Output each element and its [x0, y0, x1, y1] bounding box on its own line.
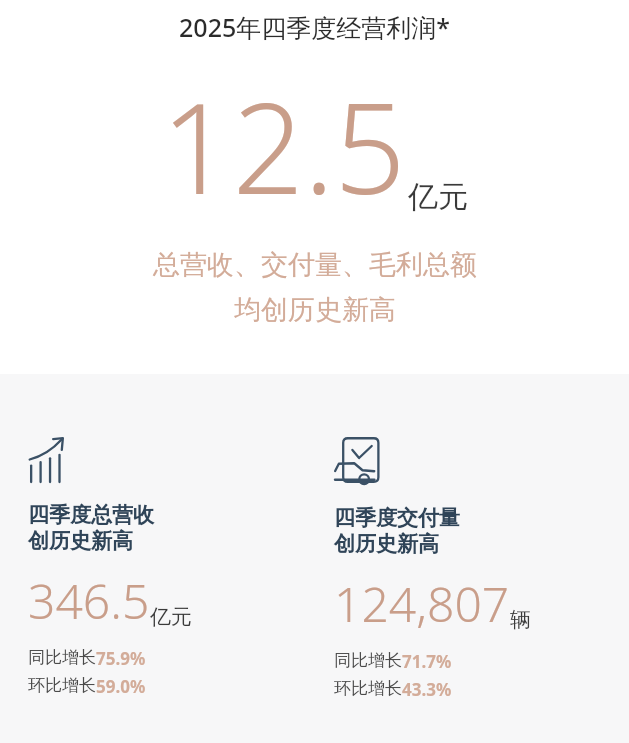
staticText: 创历史新高	[28, 528, 133, 554]
staticText: 四季度总营收	[28, 502, 154, 528]
staticText: 四季度交付量	[334, 505, 460, 531]
staticText: 59.0%	[96, 675, 146, 698]
staticText: 346.5	[28, 568, 150, 633]
button[interactable]: Revenue growth chart	[28, 436, 334, 698]
staticText: 辆	[510, 607, 531, 633]
other: Revenue growth chart	[28, 436, 70, 483]
staticText: 75.9%	[96, 647, 146, 670]
staticText: 环比增长	[334, 678, 402, 699]
staticText: 环比增长	[28, 675, 96, 696]
staticText: 同比增长	[334, 650, 402, 671]
staticText: 124,807	[334, 571, 510, 636]
staticText: 亿元	[408, 178, 468, 216]
staticText: 43.3%	[402, 678, 452, 701]
button[interactable]: Vehicle deliveries	[334, 436, 617, 701]
staticText: 总营收、交付量、毛利总额	[153, 248, 477, 282]
staticText: 均创历史新高	[234, 293, 396, 327]
staticText: 12.5	[161, 60, 406, 230]
other: Vehicle deliveries	[334, 436, 380, 486]
staticText: 创历史新高	[334, 531, 439, 557]
staticText: 2025年四季度经营利润*	[179, 10, 450, 44]
staticText: 亿元	[150, 604, 192, 630]
staticText: 同比增长	[28, 647, 96, 668]
staticText: 71.7%	[402, 650, 452, 673]
